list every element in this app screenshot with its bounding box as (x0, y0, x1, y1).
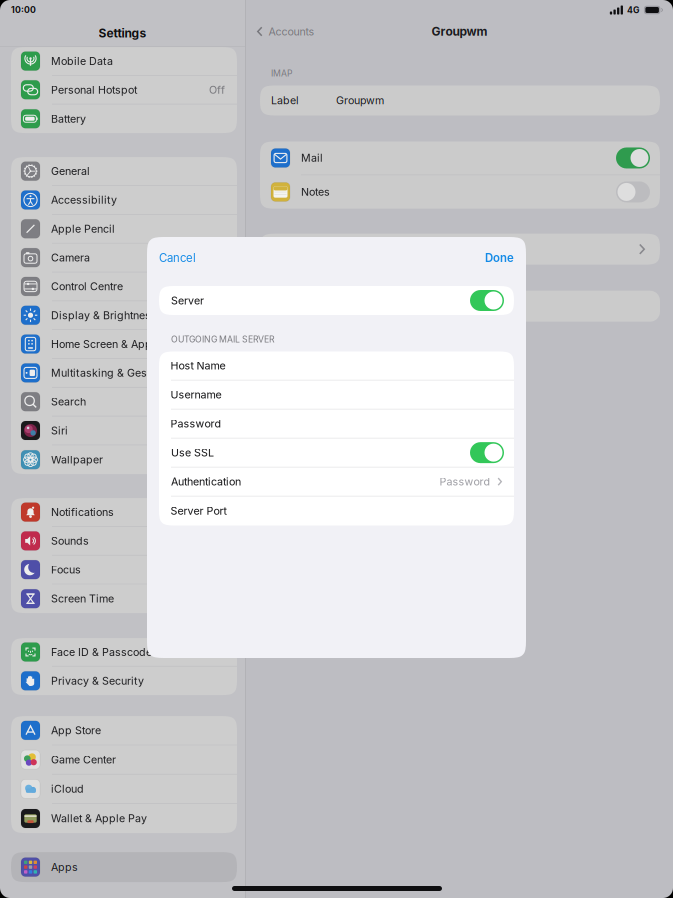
button[interactable]: Wallpaper (11, 445, 237, 474)
button[interactable]: Use SSL (470, 442, 504, 463)
staticText: App Store (51, 724, 101, 737)
staticText: Control Centre (51, 280, 123, 293)
staticText: General (51, 165, 90, 178)
staticText: Username (170, 388, 221, 401)
button[interactable]: Camera (11, 244, 237, 272)
staticText: OUTGOING MAIL SERVER (171, 334, 275, 344)
button[interactable]: Face ID & Passcode (11, 638, 237, 667)
button[interactable]: Sounds (11, 527, 237, 556)
button[interactable]: Done (479, 245, 520, 271)
button[interactable]: General (11, 157, 237, 186)
button[interactable]: Authentication (159, 467, 514, 496)
staticText: Wallpaper (51, 453, 103, 466)
staticText: Server (171, 294, 204, 307)
button[interactable]: App Store (11, 716, 237, 745)
button[interactable]: Password (159, 409, 514, 438)
staticText: Done (485, 251, 514, 265)
button[interactable]: iCloud (11, 775, 237, 804)
button[interactable]: Host Name (159, 351, 514, 380)
button[interactable]: Server Port (159, 496, 514, 525)
staticText: Focus (51, 563, 81, 576)
button[interactable]: Control Centre (11, 272, 237, 301)
staticText: Display & Brightness (51, 309, 157, 322)
staticText: Home Screen & App Library (51, 338, 191, 350)
button[interactable]: Focus (11, 556, 237, 584)
button[interactable]: Accounts (246, 20, 314, 43)
button[interactable]: Username (159, 380, 514, 409)
button[interactable]: Wallet & Apple Pay (11, 804, 237, 833)
button[interactable]: Search (11, 388, 237, 416)
staticText: Search (51, 395, 86, 408)
staticText: Groupwm (336, 94, 384, 107)
staticText: Off (209, 83, 225, 96)
button[interactable]: Notes (616, 181, 650, 202)
staticText: Groupwm (431, 24, 487, 39)
staticText: Settings (98, 26, 146, 40)
button[interactable]: Row (260, 291, 660, 322)
staticText: 4G (627, 5, 640, 15)
staticText: Use SSL (171, 446, 214, 459)
button[interactable]: Screen Time (11, 584, 237, 613)
staticText: Notifications (51, 506, 114, 519)
button[interactable]: Server (470, 290, 504, 311)
staticText: Apple Pencil (51, 222, 115, 235)
staticText: Accounts (268, 25, 314, 38)
staticText: Personal Hotspot (51, 83, 137, 96)
staticText: Apps (51, 861, 78, 873)
button[interactable]: Mobile Data (11, 47, 237, 76)
button[interactable]: Notifications (11, 498, 237, 527)
button[interactable] (260, 234, 660, 265)
staticText: Battery (51, 112, 86, 125)
button[interactable]: Siri (11, 416, 237, 445)
button[interactable]: Game Center (11, 745, 237, 775)
staticText: Screen Time (51, 592, 114, 605)
staticText: Cancel (159, 251, 196, 265)
staticText: IMAP (271, 68, 293, 78)
staticText: Game Center (51, 753, 116, 766)
button[interactable]: Home Screen & App Library (11, 330, 237, 359)
staticText: Notes (301, 185, 330, 198)
staticText: Multitasking & Gestures (51, 366, 172, 379)
staticText: Mail (301, 151, 323, 164)
staticText: Authentication (171, 475, 241, 488)
button[interactable]: Mail (616, 147, 650, 168)
button[interactable]: Multitasking & Gestures (11, 359, 237, 388)
staticText: Privacy & Security (51, 674, 144, 687)
staticText: Password (170, 417, 221, 430)
staticText: Label (271, 94, 299, 107)
button[interactable]: Battery (11, 104, 237, 133)
button[interactable]: Accessibility (11, 186, 237, 215)
staticText: Sounds (51, 534, 89, 547)
button[interactable]: Personal Hotspot (11, 76, 237, 104)
button[interactable]: Privacy & Security (11, 667, 237, 695)
staticText: Host Name (170, 359, 225, 372)
staticText: Server Port (170, 504, 226, 517)
button[interactable]: Apple Pencil (11, 215, 237, 243)
staticText: Siri (51, 424, 68, 437)
staticText: Wallet & Apple Pay (51, 812, 147, 825)
button[interactable]: Cancel (153, 245, 202, 271)
staticText: 10:00 (11, 5, 36, 15)
button[interactable]: Display & Brightness (11, 301, 237, 330)
staticText: iCloud (51, 782, 84, 795)
staticText: Password (439, 475, 490, 488)
staticText: Accessibility (51, 193, 117, 206)
staticText: Camera (51, 251, 90, 264)
staticText: Mobile Data (51, 55, 113, 67)
staticText: Face ID & Passcode (51, 645, 152, 658)
button[interactable]: Apps (11, 852, 237, 882)
